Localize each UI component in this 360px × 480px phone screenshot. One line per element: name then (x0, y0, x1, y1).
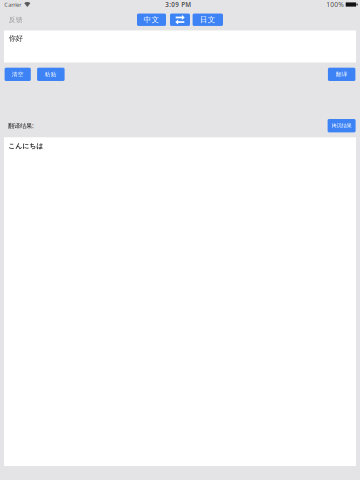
button[interactable]: 清空 (5, 68, 31, 81)
button[interactable]: 中文 (137, 14, 166, 26)
staticText: 粘贴 (45, 71, 57, 78)
staticText: 中文 (143, 15, 159, 25)
staticText: 100% (326, 0, 344, 9)
button[interactable]: 反馈 (0, 14, 33, 26)
staticText: 翻译 (336, 71, 348, 78)
staticText: 3:09 PM (165, 0, 191, 9)
staticText: 翻译结果: (8, 121, 34, 130)
staticText: 清空 (12, 71, 24, 78)
button[interactable]: 日文 (193, 14, 223, 26)
button[interactable]: Swap languages (170, 14, 190, 26)
staticText: 拷贝结果 (332, 122, 352, 129)
button[interactable]: 粘贴 (37, 68, 65, 81)
staticText: Carrier (4, 1, 21, 8)
staticText: こんにちは (8, 142, 43, 150)
button[interactable]: 翻译 (328, 68, 355, 81)
button[interactable]: 拷贝结果 (328, 119, 356, 132)
staticText: 日文 (200, 15, 216, 25)
staticText: 你好 (9, 34, 23, 43)
staticText: 反馈 (9, 15, 23, 24)
